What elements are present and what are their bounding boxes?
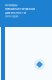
staticText: ДЕЯТЕЛЬНОСТИ [5,11,26,14]
staticText: ПРОФИЛАКТИЧЕСКОЙ [5,8,35,10]
staticText: рекомендации [5,15,18,18]
staticText: ОСНОВЫ [5,4,17,7]
